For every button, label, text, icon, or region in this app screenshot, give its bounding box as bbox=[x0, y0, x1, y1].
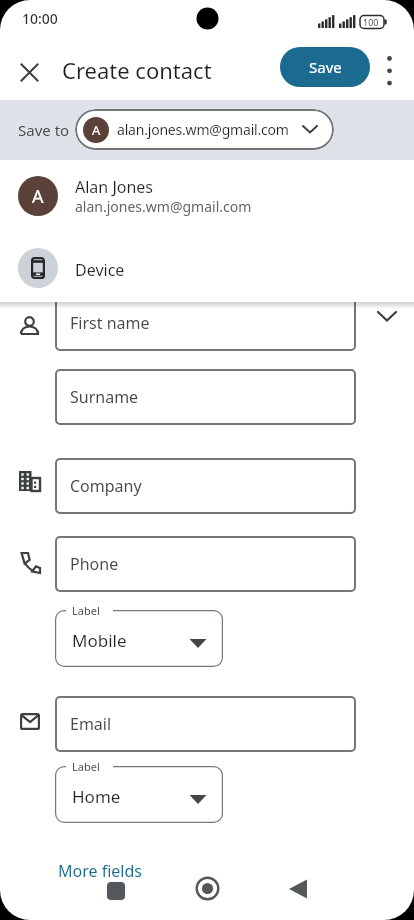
staticText: Save to bbox=[18, 120, 70, 140]
button[interactable]: Email bbox=[55, 696, 356, 752]
staticText: More fields bbox=[58, 860, 142, 882]
staticText: Mobile bbox=[72, 629, 127, 652]
button[interactable]: A bbox=[0, 164, 414, 228]
button[interactable] bbox=[287, 877, 309, 901]
button[interactable]: First name bbox=[55, 295, 356, 351]
staticText: Email bbox=[70, 713, 112, 735]
button[interactable]: Device bbox=[0, 240, 414, 298]
staticText: A bbox=[92, 121, 101, 139]
staticText: A bbox=[32, 184, 44, 209]
button[interactable]: Surname bbox=[55, 369, 356, 425]
button[interactable] bbox=[376, 308, 398, 324]
staticText: Label bbox=[72, 759, 100, 774]
staticText: Phone bbox=[70, 553, 119, 575]
staticText: 100 bbox=[363, 16, 379, 28]
button[interactable]: Phone bbox=[55, 536, 356, 592]
button[interactable] bbox=[20, 63, 39, 82]
staticText: alan.jones.wm@gmail.com bbox=[117, 120, 289, 139]
staticText: 10:00 bbox=[22, 9, 58, 28]
button[interactable] bbox=[103, 878, 129, 904]
button[interactable]: Save bbox=[280, 47, 370, 87]
button[interactable] bbox=[380, 52, 399, 90]
staticText: Label bbox=[72, 603, 100, 618]
staticText: Create contact bbox=[62, 55, 212, 85]
staticText: Home bbox=[72, 785, 121, 808]
staticText: First name bbox=[70, 312, 150, 334]
button[interactable]: Label bbox=[55, 610, 223, 667]
button[interactable]: A bbox=[75, 109, 334, 150]
button[interactable]: Label bbox=[55, 766, 223, 823]
button[interactable]: More fields bbox=[48, 856, 152, 886]
button[interactable] bbox=[195, 876, 220, 901]
staticText: Surname bbox=[70, 386, 139, 408]
staticText: Save bbox=[309, 57, 342, 77]
button[interactable]: Company bbox=[55, 458, 356, 514]
staticText: alan.jones.wm@gmail.com bbox=[75, 197, 252, 216]
staticText: Company bbox=[70, 475, 142, 497]
staticText: Device bbox=[75, 259, 125, 281]
staticText: Alan Jones bbox=[75, 176, 154, 198]
